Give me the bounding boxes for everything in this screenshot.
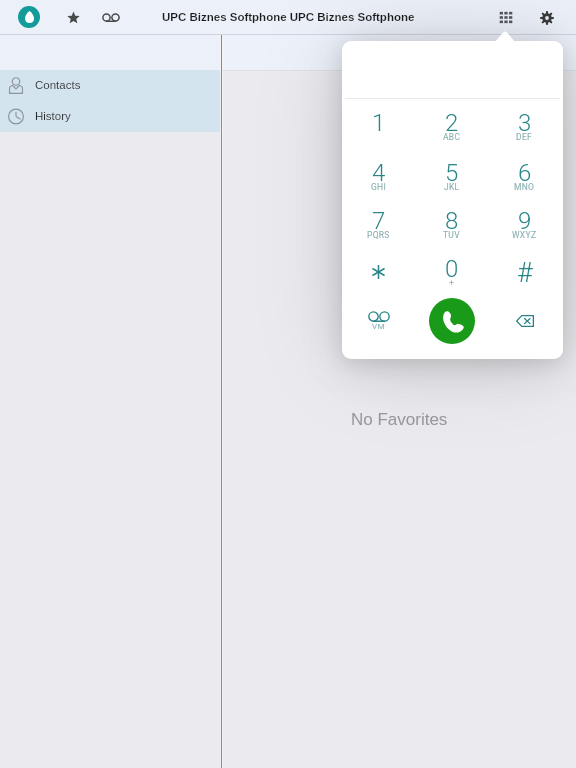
button[interactable]: Account bbox=[18, 6, 40, 28]
staticText: 3 bbox=[518, 109, 532, 137]
staticText: 0 bbox=[445, 255, 459, 283]
staticText: 1 bbox=[372, 109, 386, 137]
button[interactable]: Settings bbox=[533, 4, 560, 31]
button[interactable]: 7 bbox=[342, 195, 415, 243]
staticText: 8 bbox=[445, 207, 459, 235]
staticText: 4 bbox=[372, 159, 386, 187]
staticText: WXYZ bbox=[512, 230, 537, 240]
staticText: Contacts bbox=[35, 79, 81, 92]
button[interactable]: Voicemail bbox=[342, 296, 415, 346]
button[interactable]: Call bbox=[429, 298, 475, 344]
button[interactable]: 8 bbox=[415, 195, 488, 243]
staticText: DEF bbox=[516, 132, 533, 142]
button[interactable]: 5 bbox=[415, 147, 488, 195]
staticText: GHI bbox=[371, 182, 387, 192]
staticText: # bbox=[517, 257, 533, 289]
button[interactable]: Voicemail bbox=[98, 5, 123, 30]
button[interactable]: # bbox=[488, 243, 561, 291]
staticText: TUV bbox=[443, 230, 460, 240]
staticText: UPC Biznes Softphone UPC Biznes Softphon… bbox=[162, 11, 415, 24]
staticText: VM bbox=[372, 322, 385, 331]
button[interactable]: 4 bbox=[342, 147, 415, 195]
staticText: 2 bbox=[445, 109, 459, 137]
staticText: No Favorites bbox=[351, 410, 448, 429]
button[interactable]: Backspace bbox=[489, 296, 562, 346]
staticText: MNO bbox=[514, 182, 535, 192]
staticText: + bbox=[449, 278, 455, 288]
staticText: 5 bbox=[445, 159, 459, 187]
staticText: PQRS bbox=[367, 230, 390, 240]
button[interactable]: 1 bbox=[342, 97, 415, 145]
button[interactable]: Contacts bbox=[0, 70, 220, 101]
button[interactable]: 9 bbox=[488, 195, 561, 243]
button[interactable]: 3 bbox=[488, 97, 561, 145]
staticText: 6 bbox=[518, 159, 532, 187]
button[interactable]: History bbox=[0, 101, 220, 132]
staticText: 9 bbox=[518, 207, 532, 235]
staticText: History bbox=[35, 110, 71, 123]
button[interactable]: 6 bbox=[488, 147, 561, 195]
button[interactable]: Favorites bbox=[61, 5, 86, 30]
staticText: 7 bbox=[372, 207, 386, 235]
button[interactable] bbox=[342, 243, 415, 291]
button[interactable]: Dialpad bbox=[492, 4, 519, 31]
staticText: JKL bbox=[444, 182, 460, 192]
button[interactable]: 2 bbox=[415, 97, 488, 145]
button[interactable]: 0 bbox=[415, 243, 488, 291]
staticText: ABC bbox=[443, 132, 461, 142]
